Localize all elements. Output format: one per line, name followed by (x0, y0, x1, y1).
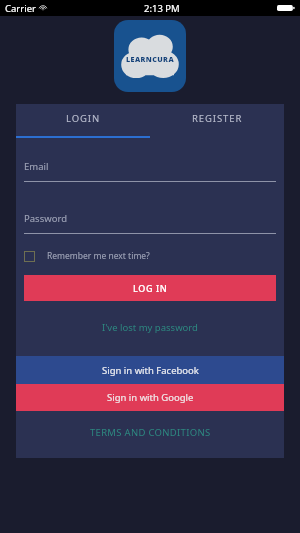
staticText: LEARNCURA (126, 54, 174, 64)
button[interactable]: TERMS AND CONDITIONS (16, 426, 284, 439)
button[interactable]: REGISTER (150, 104, 284, 138)
staticText: TERMS AND CONDITIONS (90, 426, 211, 439)
staticText: Remember me next time? (47, 250, 150, 262)
button[interactable]: LOG IN (24, 275, 276, 301)
staticText: I've lost my password (102, 321, 198, 334)
staticText: Sign in with Google (107, 391, 194, 404)
button[interactable]: Sign in with Google (16, 384, 284, 411)
button[interactable]: I've lost my password (16, 321, 284, 334)
staticText: REGISTER (192, 112, 243, 125)
staticText: Carrier (5, 2, 36, 15)
other: Learncura logo (114, 20, 186, 92)
button[interactable]: LOGIN (16, 104, 150, 138)
staticText: 2:13 PM (144, 2, 180, 15)
button[interactable]: Remember me next time? (24, 250, 276, 262)
button[interactable]: Sign in with Facebook (16, 356, 284, 384)
staticText: Sign in with Facebook (102, 364, 199, 377)
staticText: Password (24, 212, 67, 225)
staticText: LOG IN (133, 282, 168, 294)
staticText: Email (24, 160, 49, 173)
staticText: LOGIN (66, 112, 101, 125)
